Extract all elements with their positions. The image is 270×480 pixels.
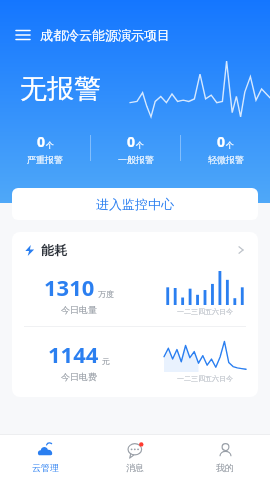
staticText: 1144: [48, 339, 99, 369]
staticText: 我的: [216, 462, 234, 473]
staticText: 个: [226, 140, 234, 150]
staticText: 一般报警: [118, 154, 154, 165]
button[interactable]: 我的: [180, 435, 270, 480]
staticText: 万度: [98, 289, 114, 299]
staticText: 云管理: [32, 462, 59, 473]
button[interactable]: Menu: [10, 22, 36, 48]
staticText: 严重报警: [27, 154, 63, 165]
button[interactable]: 0: [91, 132, 180, 165]
staticText: 今日电费: [61, 371, 97, 382]
staticText: 0: [127, 132, 136, 151]
staticText: 0: [37, 132, 46, 151]
staticText: 1310: [44, 272, 95, 302]
staticText: 无报警: [20, 72, 101, 106]
staticText: 0: [217, 132, 226, 151]
staticText: 一二三四五六日今: [177, 307, 233, 316]
staticText: 一二三四五六日今: [177, 374, 233, 383]
button[interactable]: 消息: [90, 435, 180, 480]
button[interactable]: 0: [181, 132, 270, 165]
staticText: 元: [102, 356, 110, 366]
staticText: 能耗: [41, 242, 67, 258]
staticText: 消息: [126, 462, 144, 473]
button[interactable]: 云管理: [0, 435, 90, 480]
staticText: 个: [46, 140, 54, 150]
button[interactable]: 0: [0, 132, 90, 165]
button[interactable]: 进入监控中心: [12, 188, 258, 220]
staticText: 轻微报警: [208, 154, 244, 165]
staticText: 进入监控中心: [96, 196, 174, 212]
staticText: 今日电量: [61, 304, 97, 315]
button[interactable]: 能耗: [12, 232, 258, 397]
staticText: 个: [136, 140, 144, 150]
staticText: 成都冷云能源演示项目: [40, 27, 170, 43]
